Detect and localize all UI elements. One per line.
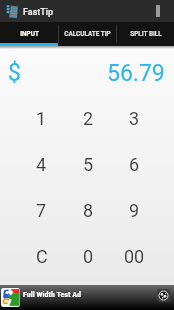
staticText: 56.79 xyxy=(107,60,165,87)
button[interactable]: More options xyxy=(150,0,174,22)
staticText: 8 xyxy=(83,200,94,221)
staticText: $ xyxy=(8,60,21,87)
staticText: 3 xyxy=(129,108,140,129)
button[interactable]: 4 xyxy=(18,141,65,187)
staticText: 9 xyxy=(129,200,140,221)
staticText: 2 xyxy=(83,108,94,129)
button[interactable]: Full Width Test Ad xyxy=(0,285,174,310)
staticText: Full Width Test Ad xyxy=(23,290,82,299)
staticText: 6 xyxy=(129,154,140,175)
button[interactable]: INPUT xyxy=(0,22,58,46)
staticText: 1 xyxy=(36,108,47,129)
staticText: INPUT xyxy=(20,30,39,38)
button[interactable]: 0 xyxy=(65,233,111,279)
button[interactable]: 3 xyxy=(111,95,157,141)
button[interactable]: 1 xyxy=(18,95,65,141)
staticText: 7 xyxy=(36,200,47,221)
button[interactable]: Ad info xyxy=(157,289,170,302)
button[interactable]: 2 xyxy=(65,95,111,141)
staticText: 5 xyxy=(83,154,94,175)
button[interactable]: 8 xyxy=(65,187,111,233)
staticText: FastTip xyxy=(23,7,54,18)
staticText: 0 xyxy=(83,246,94,267)
button[interactable]: 7 xyxy=(18,187,65,233)
staticText: 00 xyxy=(124,246,145,267)
button[interactable]: 00 xyxy=(111,233,157,279)
staticText: CALCULATE TIP xyxy=(64,30,111,38)
button[interactable]: C xyxy=(18,233,65,279)
button[interactable]: 6 xyxy=(111,141,157,187)
staticText: 4 xyxy=(36,154,47,175)
staticText: C xyxy=(36,246,48,267)
staticText: SPLIT BILL xyxy=(130,30,162,38)
button[interactable]: 9 xyxy=(111,187,157,233)
button[interactable]: 5 xyxy=(65,141,111,187)
button[interactable]: SPLIT BILL xyxy=(117,22,174,46)
button[interactable]: CALCULATE TIP xyxy=(59,22,116,46)
